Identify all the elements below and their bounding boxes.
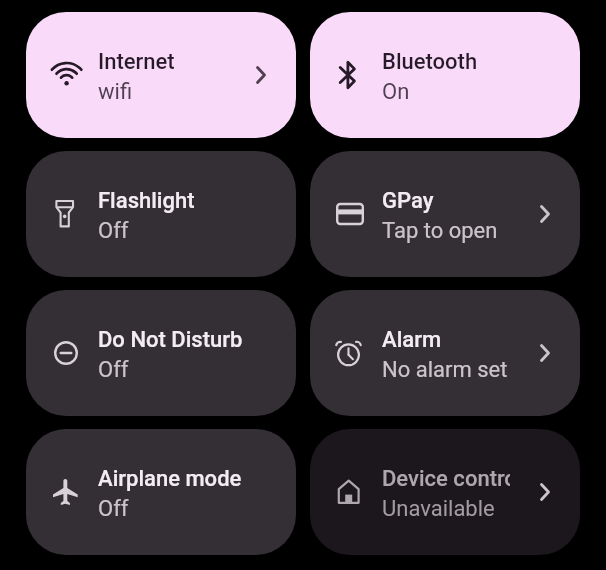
staticText: Alarm <box>382 327 442 353</box>
staticText: Flashlight <box>98 188 195 214</box>
staticText: On <box>382 79 410 105</box>
staticText: Off <box>98 357 129 383</box>
staticText: wifi <box>98 79 133 105</box>
staticText: Off <box>98 496 129 522</box>
staticText: No alarm set <box>382 357 508 383</box>
button[interactable]: Device controls <box>310 429 580 555</box>
staticText: Airplane mode <box>98 466 242 492</box>
button[interactable]: Flashlight <box>26 151 296 277</box>
staticText: Device controls <box>382 466 510 492</box>
staticText: GPay <box>382 188 434 214</box>
staticText: Tap to open <box>382 218 498 244</box>
staticText: Do Not Disturb <box>98 327 243 353</box>
button[interactable]: GPay <box>310 151 580 277</box>
button[interactable]: Do Not Disturb <box>26 290 296 416</box>
button[interactable]: Airplane mode <box>26 429 296 555</box>
staticText: Internet <box>98 49 175 75</box>
staticText: Bluetooth <box>382 49 478 75</box>
button[interactable]: Alarm <box>310 290 580 416</box>
staticText: Unavailable <box>382 496 495 522</box>
staticText: Off <box>98 218 129 244</box>
button[interactable]: Internet <box>26 12 296 138</box>
button[interactable]: Bluetooth <box>310 12 580 138</box>
